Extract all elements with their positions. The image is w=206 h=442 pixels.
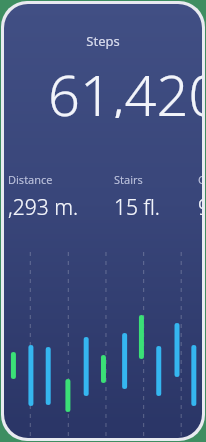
button[interactable]: Distance xyxy=(8,172,79,222)
staticText: 15 fl. xyxy=(114,193,160,222)
staticText: Stairs xyxy=(114,172,143,187)
staticText: Steps xyxy=(4,32,202,50)
button[interactable]: Stairs xyxy=(114,172,160,222)
button[interactable]: Steps xyxy=(4,32,202,50)
button[interactable]: C xyxy=(198,172,202,222)
staticText: 61,420 xyxy=(48,56,202,118)
staticText: 98 xyxy=(198,193,202,222)
staticText: Distance xyxy=(8,172,53,187)
button[interactable]: Step activity chart xyxy=(4,278,202,438)
staticText: C xyxy=(198,172,202,187)
staticText: ,293 m. xyxy=(8,193,79,222)
